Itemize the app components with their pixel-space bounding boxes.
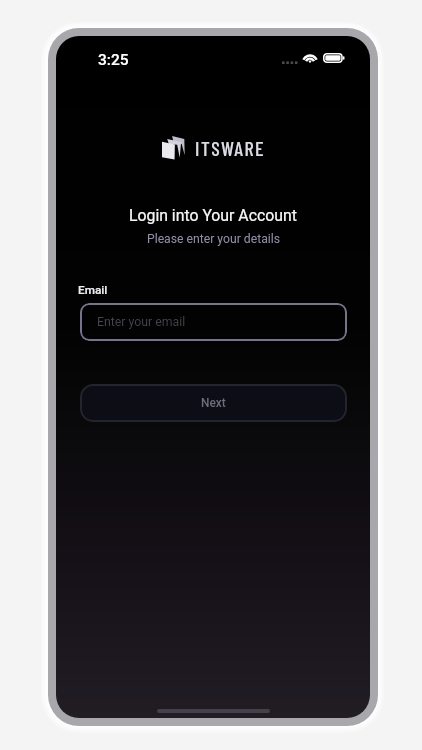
staticText: Please enter your details [147, 232, 280, 246]
button[interactable]: Next [80, 384, 347, 422]
staticText: Email [78, 283, 108, 297]
staticText: Next [201, 396, 226, 410]
staticText: 3:25 [98, 51, 129, 69]
staticText: ITSWARE [195, 136, 266, 160]
staticText: Login into Your Account [129, 206, 297, 225]
button[interactable]: Enter your email [80, 303, 347, 341]
staticText: Enter your email [97, 315, 186, 329]
